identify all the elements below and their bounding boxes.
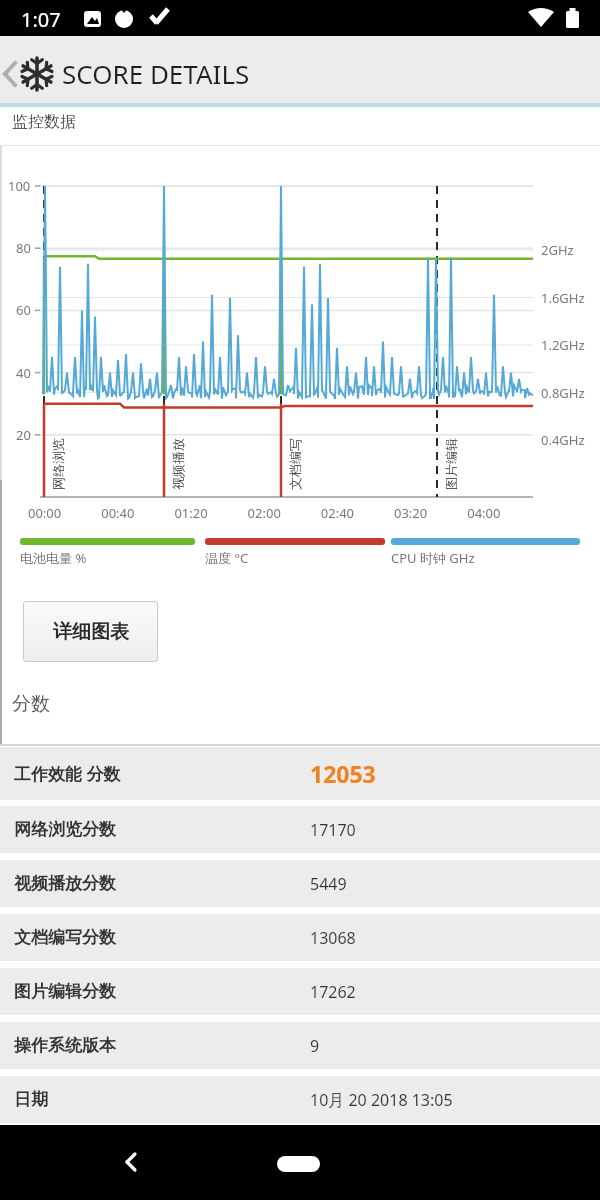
staticText: CPU 时钟 GHz xyxy=(391,549,475,567)
staticText: 视频播放分数 xyxy=(14,873,116,894)
staticText: 5449 xyxy=(310,873,347,895)
staticText: 12053 xyxy=(310,758,376,789)
staticText: 详细图表 xyxy=(53,620,129,644)
staticText: SCORE DETAILS xyxy=(62,56,250,91)
staticText: 17262 xyxy=(310,981,356,1003)
button[interactable]: 文档编写分数 xyxy=(0,914,600,961)
button[interactable]: SCORE DETAILS xyxy=(0,36,600,103)
staticText: 电池电量 % xyxy=(20,549,87,567)
staticText: 操作系统版本 xyxy=(14,1035,116,1056)
staticText: 监控数据 xyxy=(12,112,76,132)
staticText: 日期 xyxy=(14,1089,48,1110)
staticText: 温度 °C xyxy=(205,549,249,567)
button[interactable]: 视频播放分数 xyxy=(0,860,600,907)
staticText: 9 xyxy=(310,1035,320,1057)
staticText: 文档编写分数 xyxy=(14,927,116,948)
staticText: 工作效能 分数 xyxy=(14,762,121,785)
button[interactable]: 图片编辑分数 xyxy=(0,968,600,1015)
staticText: 10月 20 2018 13:05 xyxy=(310,1089,453,1111)
button[interactable]: 详细图表 xyxy=(23,601,158,662)
staticText: 13068 xyxy=(310,927,356,949)
button[interactable]: 网络浏览分数 xyxy=(0,806,600,853)
button[interactable]: 工作效能 分数 xyxy=(0,747,600,800)
button[interactable]: 日期 xyxy=(0,1076,600,1123)
button[interactable] xyxy=(118,1148,146,1176)
button[interactable]: 操作系统版本 xyxy=(0,1022,600,1069)
staticText: 图片编辑分数 xyxy=(14,981,116,1002)
staticText: 网络浏览分数 xyxy=(14,819,116,840)
staticText: 17170 xyxy=(310,819,356,841)
staticText: 分数 xyxy=(12,692,50,716)
button[interactable] xyxy=(277,1156,320,1172)
staticText: 1:07 xyxy=(21,6,61,33)
